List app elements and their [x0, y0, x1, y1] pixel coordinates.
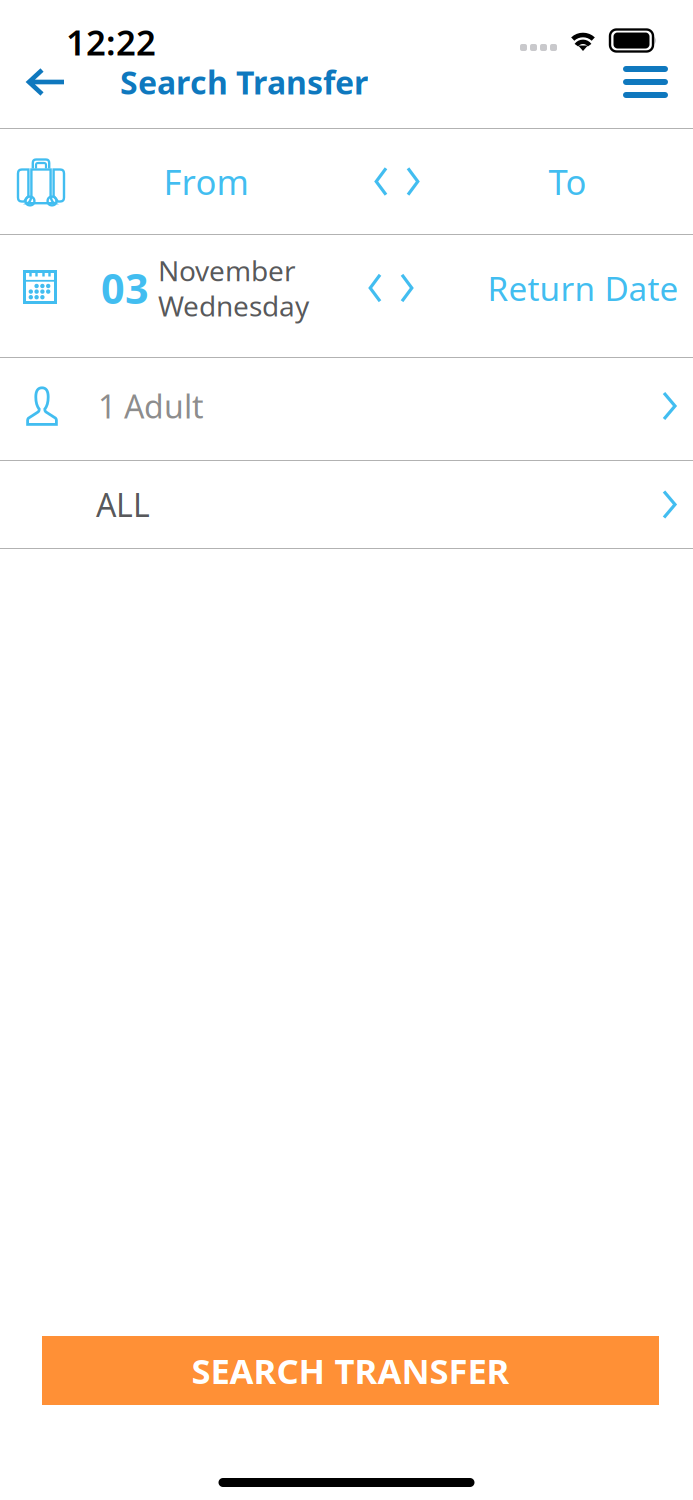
staticText: 03 [101, 261, 149, 315]
staticText: 1 Adult [98, 385, 204, 427]
staticText: November [158, 252, 296, 289]
staticText: Return Date [487, 266, 678, 310]
button[interactable]: 1 Adult [0, 358, 693, 460]
button[interactable]: Back [0, 58, 78, 128]
button[interactable]: 03 [0, 235, 693, 357]
staticText: SEARCH TRANSFER [191, 1347, 509, 1393]
button[interactable]: From [0, 129, 693, 234]
staticText: ALL [96, 483, 150, 526]
staticText: From [163, 158, 248, 204]
staticText: Search Transfer [120, 61, 368, 103]
button[interactable]: SEARCH TRANSFER [42, 1336, 659, 1405]
button[interactable]: Menu [623, 58, 693, 128]
staticText: Wednesday [158, 287, 309, 324]
staticText: To [548, 158, 586, 204]
button[interactable]: ALL [0, 461, 693, 548]
staticText: 12:22 [66, 19, 156, 65]
